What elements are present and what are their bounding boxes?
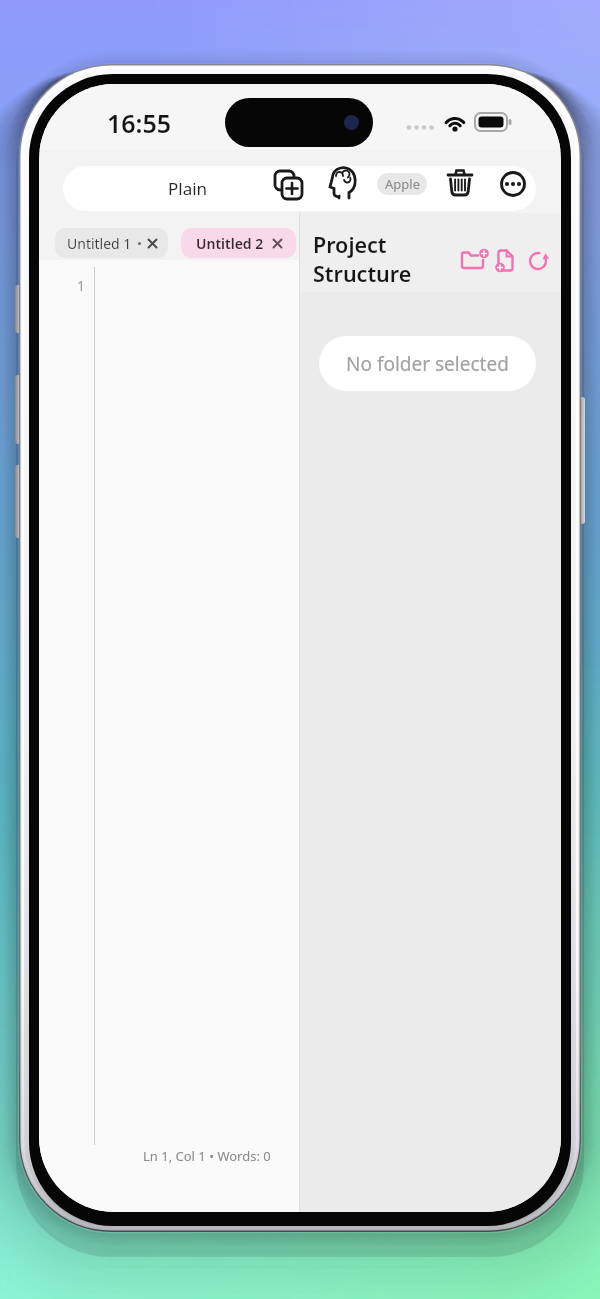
staticText: Project [313, 230, 387, 259]
button[interactable] [494, 246, 518, 273]
staticText: Untitled 1 [67, 234, 132, 253]
staticText: Structure [313, 259, 412, 288]
staticText: 1 [77, 276, 86, 295]
staticText: Ln 1, Col 1 • Words: 0 [143, 1147, 271, 1165]
button[interactable] [459, 247, 487, 272]
button[interactable]: Untitled 2 [181, 228, 296, 258]
button[interactable] [527, 248, 549, 273]
button[interactable]: Untitled 1 [55, 228, 168, 258]
button[interactable] [498, 169, 528, 199]
button[interactable]: No folder selected [319, 336, 536, 391]
staticText: Plain [168, 177, 208, 200]
button[interactable]: Plain [138, 166, 238, 211]
button[interactable] [328, 168, 358, 198]
button[interactable] [445, 169, 475, 199]
staticText: Apple [385, 175, 420, 193]
button[interactable] [274, 170, 304, 200]
staticText: 16:55 [107, 106, 172, 138]
button[interactable]: Apple [377, 173, 427, 195]
staticText: No folder selected [346, 351, 509, 377]
staticText: Untitled 2 [196, 234, 264, 253]
